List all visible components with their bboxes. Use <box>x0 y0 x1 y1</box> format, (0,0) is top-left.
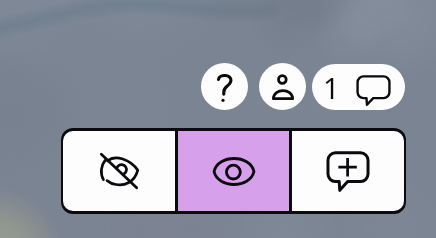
button[interactable]: Show video <box>178 131 289 211</box>
button[interactable]: Participants <box>259 63 306 110</box>
button[interactable]: Help <box>201 63 248 110</box>
button[interactable]: New message <box>292 131 404 211</box>
button[interactable]: 1 <box>312 64 405 110</box>
button[interactable]: Hide video <box>63 131 175 211</box>
staticText: 1 <box>323 68 340 107</box>
